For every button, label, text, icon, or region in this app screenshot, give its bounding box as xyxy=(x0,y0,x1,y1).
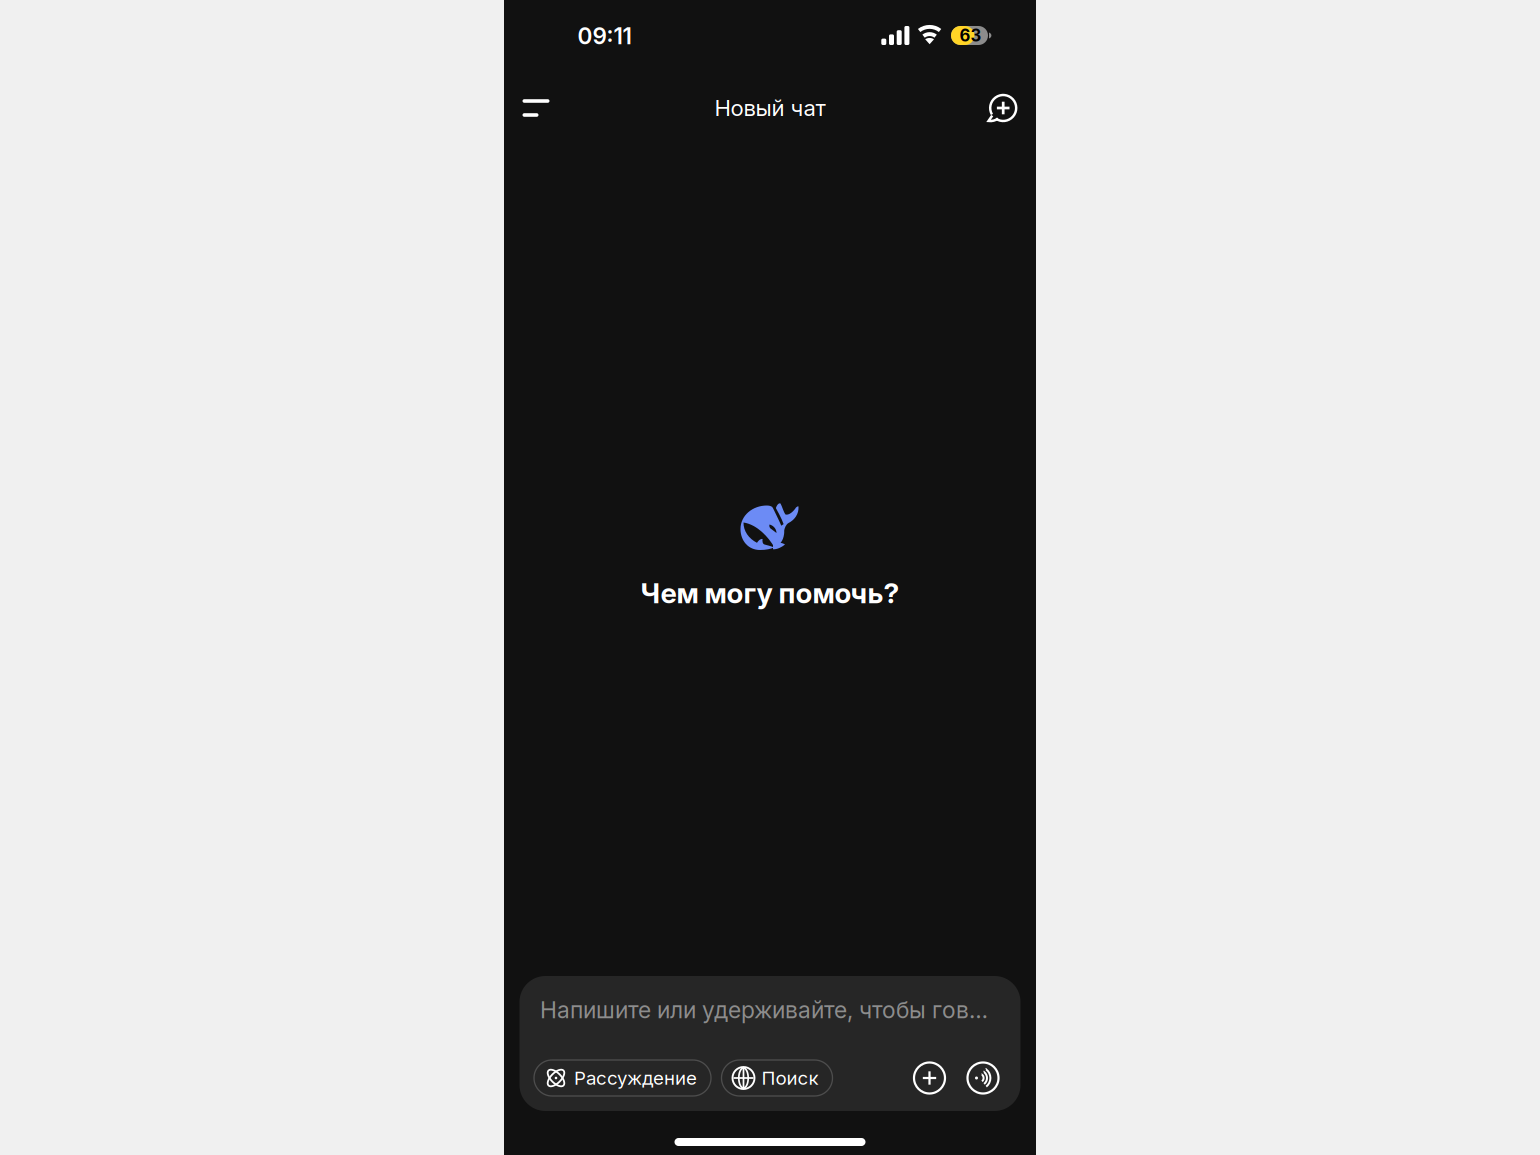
staticText: Чем могу помочь? xyxy=(640,576,899,610)
button[interactable]: Add attachment xyxy=(914,1062,945,1093)
staticText: Поиск xyxy=(761,1067,818,1089)
staticText: Рассуждение xyxy=(574,1067,697,1089)
staticText: Новый чат xyxy=(714,94,825,121)
staticText: 09:11 xyxy=(577,22,631,50)
button[interactable]: New chat xyxy=(980,87,1024,131)
staticText: 63 xyxy=(959,25,981,46)
button[interactable]: Voice input xyxy=(967,1062,998,1093)
button[interactable]: Поиск xyxy=(721,1060,832,1096)
button[interactable]: Chat history xyxy=(514,86,558,130)
staticText: Напишите или удерживайте, чтобы гов… xyxy=(540,996,988,1024)
button[interactable]: Рассуждение xyxy=(534,1060,711,1096)
